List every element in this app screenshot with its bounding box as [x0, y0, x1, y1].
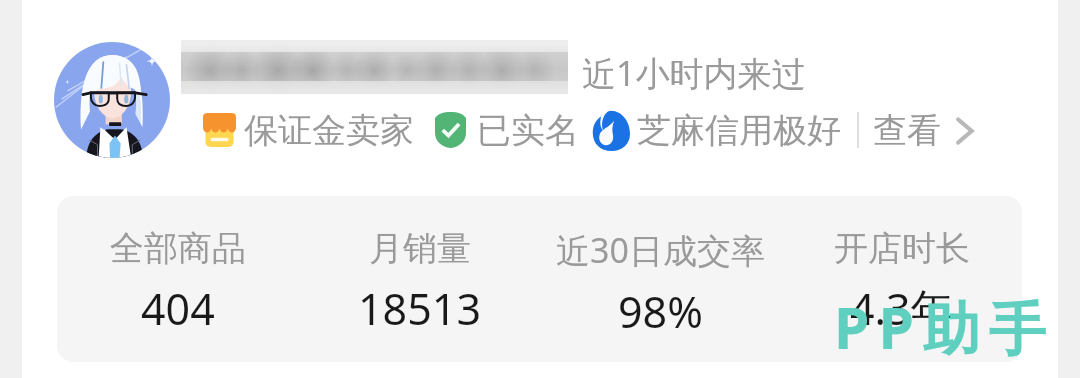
- staticText: 近1小时内来过: [582, 50, 806, 96]
- button[interactable]: 月销量: [299, 196, 540, 362]
- staticText: 4.3年: [850, 279, 954, 338]
- button[interactable]: 卖家头像: [54, 42, 170, 158]
- staticText: 开店时长: [834, 227, 970, 270]
- staticText: PP助手: [834, 288, 1055, 366]
- staticText: 已实名: [477, 109, 579, 152]
- staticText: 98%: [618, 282, 703, 341]
- staticText: 18513: [358, 279, 481, 338]
- staticText: 近30日成交率: [556, 227, 765, 273]
- staticText: 月销量: [369, 227, 471, 270]
- staticText: 404: [141, 279, 215, 338]
- button[interactable]: 全部商品: [57, 196, 299, 362]
- staticText: 保证金卖家: [244, 109, 414, 152]
- button[interactable]: 近30日成交率: [540, 196, 781, 362]
- button[interactable]: 开店时长: [781, 196, 1022, 362]
- button[interactable]: 查看: [859, 109, 975, 152]
- staticText: 全部商品: [110, 227, 246, 270]
- staticText: 芝麻信用极好: [637, 109, 841, 152]
- staticText: 查看: [873, 109, 941, 152]
